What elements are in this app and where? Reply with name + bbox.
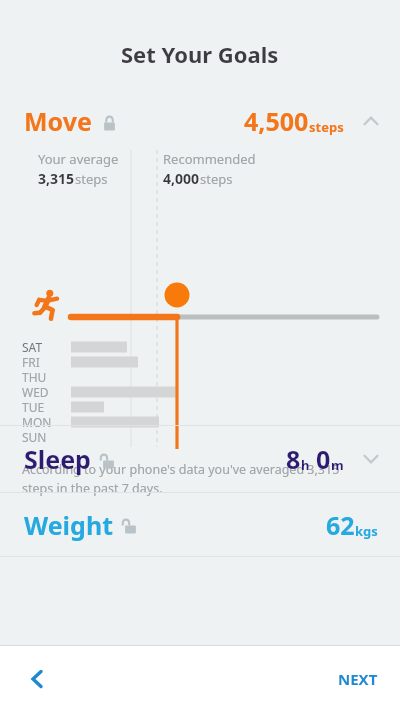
- button[interactable]: Collapse Move: [358, 108, 384, 134]
- staticText: THU: [22, 369, 47, 384]
- staticText: MON: [22, 414, 52, 429]
- staticText: 0: [316, 442, 331, 476]
- button[interactable]: Sleep: [0, 426, 400, 492]
- staticText: Recommended: [163, 150, 256, 168]
- staticText: Your average: [38, 150, 119, 168]
- staticText: WED: [22, 384, 49, 399]
- staticText: kgs: [355, 522, 378, 540]
- staticText: steps: [309, 118, 344, 136]
- staticText: FRI: [22, 354, 40, 369]
- staticText: steps in the past 7 days.: [22, 480, 163, 497]
- staticText: TUE: [22, 399, 45, 414]
- staticText: h: [301, 456, 310, 474]
- staticText: 62: [326, 508, 355, 542]
- staticText: 4,000: [163, 169, 200, 188]
- staticText: Move: [24, 104, 92, 138]
- staticText: steps: [75, 170, 108, 188]
- button[interactable]: Move: [0, 92, 400, 150]
- staticText: Set Your Goals: [121, 39, 279, 69]
- staticText: steps: [200, 170, 233, 188]
- staticText: Sleep: [24, 442, 91, 476]
- staticText: NEXT: [338, 669, 378, 689]
- staticText: SAT: [22, 339, 43, 354]
- staticText: m: [331, 456, 344, 474]
- staticText: 3,315: [38, 169, 75, 188]
- staticText: SUN: [22, 429, 47, 444]
- button[interactable]: Weight: [0, 493, 400, 556]
- button[interactable]: Back: [0, 646, 74, 711]
- button[interactable]: Expand Sleep: [358, 446, 384, 472]
- staticText: Weight: [24, 508, 113, 542]
- staticText: 4,500: [244, 104, 309, 138]
- staticText: According to your phone's data you've av…: [22, 461, 340, 478]
- button[interactable]: NEXT: [316, 651, 400, 707]
- staticText: 8: [286, 442, 301, 476]
